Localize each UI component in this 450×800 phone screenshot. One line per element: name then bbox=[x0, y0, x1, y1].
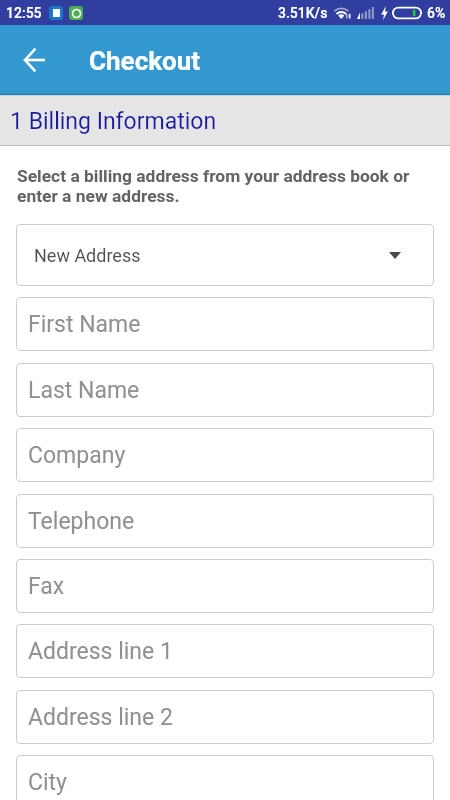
button[interactable]: Address line 1 bbox=[16, 624, 434, 678]
staticText: Last Name bbox=[28, 377, 140, 404]
staticText: 1 Billing Information bbox=[10, 108, 217, 135]
staticText: 6% bbox=[427, 5, 446, 21]
button[interactable]: City bbox=[16, 755, 434, 800]
button[interactable]: Last Name bbox=[16, 363, 434, 417]
staticText: Telephone bbox=[28, 508, 135, 535]
button[interactable]: Address line 2 bbox=[16, 690, 434, 744]
button[interactable]: Fax bbox=[16, 559, 434, 613]
staticText: 3.51K/s bbox=[278, 5, 328, 21]
staticText: New Address bbox=[34, 245, 141, 266]
staticText: Address line 1 bbox=[28, 638, 173, 665]
staticText: City bbox=[28, 769, 67, 796]
button[interactable]: Back bbox=[0, 25, 69, 95]
button[interactable]: 1 Billing Information bbox=[0, 96, 450, 145]
staticText: 12:55 bbox=[6, 5, 42, 21]
staticText: Fax bbox=[28, 573, 65, 600]
staticText: Checkout bbox=[89, 46, 201, 76]
staticText: Address line 2 bbox=[28, 704, 173, 731]
button[interactable]: Telephone bbox=[16, 494, 434, 548]
staticText: Company bbox=[28, 442, 126, 469]
staticText: Select a billing address from your addre… bbox=[17, 166, 433, 206]
staticText: First Name bbox=[28, 311, 141, 338]
button[interactable]: First Name bbox=[16, 297, 434, 351]
button[interactable]: New Address bbox=[16, 224, 434, 286]
button[interactable]: Company bbox=[16, 428, 434, 482]
